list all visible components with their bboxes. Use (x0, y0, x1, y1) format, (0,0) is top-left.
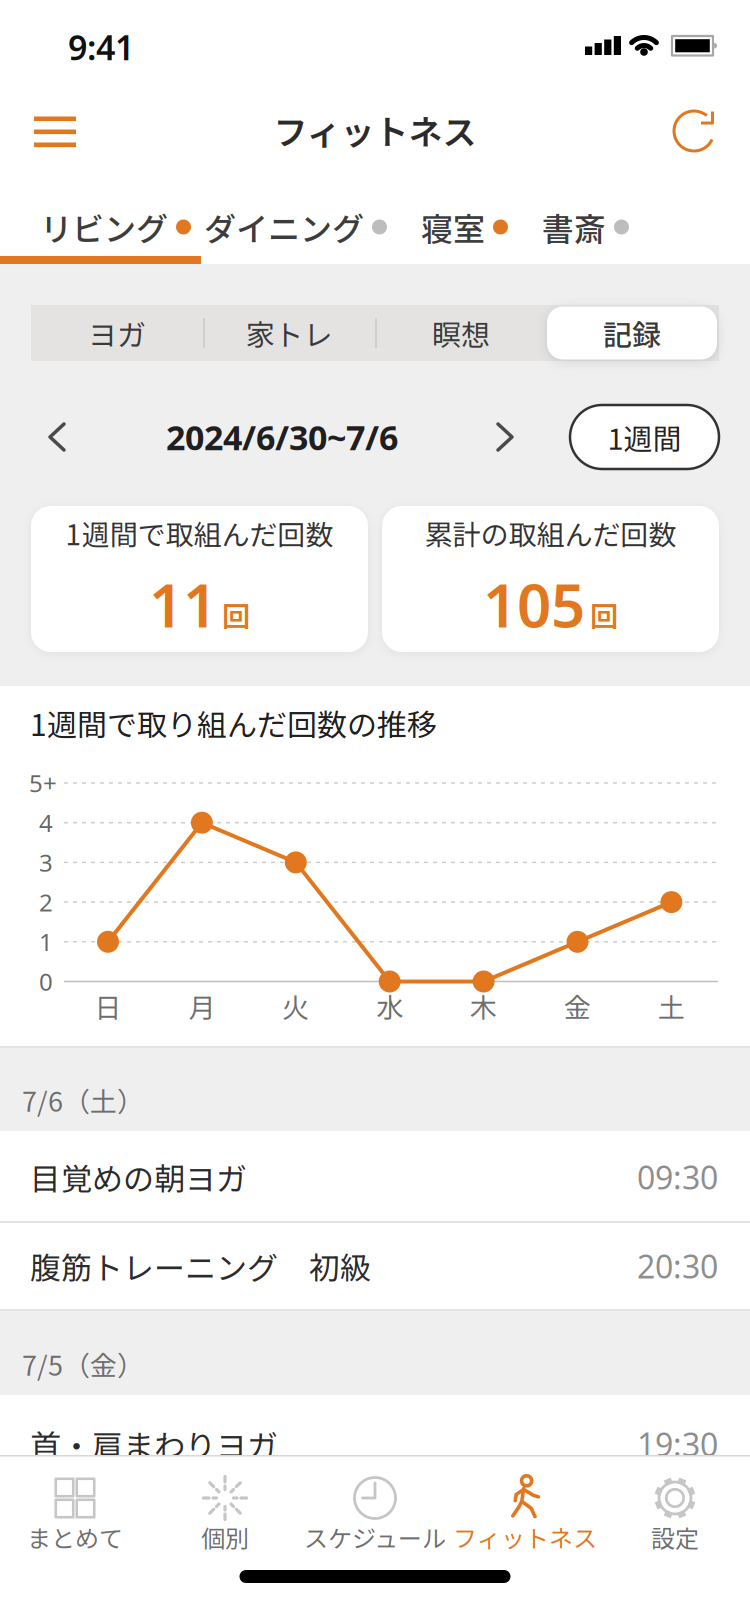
staticText: 7/6（土） (22, 1080, 144, 1120)
staticText: 木 (470, 986, 497, 1026)
button[interactable]: 記録 (546, 305, 718, 361)
button[interactable] (35, 415, 79, 459)
staticText: 目覚めの朝ヨガ (30, 1155, 247, 1199)
staticText: 土 (658, 986, 685, 1026)
staticText: ヨガ (88, 312, 146, 354)
staticText: 火 (282, 986, 309, 1026)
staticText: 腹筋トレーニング 初級 (30, 1244, 371, 1288)
staticText: リビング (40, 204, 168, 250)
button[interactable]: 家トレ (203, 305, 375, 361)
button[interactable]: フィットネス (450, 1455, 600, 1565)
staticText: 日 (94, 986, 121, 1026)
staticText: 105 (483, 563, 585, 645)
staticText: 1週間で取組んだ回数 (65, 513, 333, 553)
staticText: 19:30 (637, 1422, 718, 1466)
staticText: 個別 (201, 1520, 249, 1554)
staticText: 月 (188, 986, 215, 1026)
button[interactable]: 寝室 (421, 204, 508, 250)
staticText: 書斎 (542, 204, 606, 250)
staticText: 家トレ (245, 312, 332, 354)
button[interactable]: 設定 (600, 1455, 750, 1565)
staticText: ダイニング (204, 204, 364, 250)
staticText: 4 (39, 806, 53, 839)
staticText: 累計の取組んだ回数 (424, 513, 676, 553)
button[interactable]: 瞑想 (375, 305, 547, 361)
staticText: 09:30 (637, 1155, 718, 1199)
staticText: 0 (39, 965, 53, 998)
staticText: フィットネス (453, 1520, 597, 1554)
staticText: 7/5（金） (22, 1344, 144, 1384)
staticText: 11 (149, 563, 217, 645)
staticText: 回 (222, 595, 250, 635)
staticText: 水 (376, 986, 403, 1026)
staticText: 2024/6/30~7/6 (166, 414, 398, 460)
button[interactable]: ダイニング (204, 204, 387, 250)
button[interactable]: まとめて (0, 1455, 150, 1565)
button[interactable]: リビング (40, 204, 191, 250)
staticText: 20:30 (637, 1244, 718, 1288)
staticText: 瞑想 (432, 312, 490, 354)
staticText: 1 (39, 925, 53, 958)
button[interactable]: 書斎 (542, 204, 629, 250)
staticText: 設定 (651, 1520, 699, 1554)
button[interactable] (30, 106, 80, 156)
staticText: 記録 (603, 312, 661, 354)
button[interactable]: 1週間 (570, 405, 719, 469)
staticText: スケジュール (304, 1520, 446, 1554)
staticText: 金 (564, 986, 591, 1026)
staticText: 1週間 (607, 416, 681, 458)
staticText: 5+ (29, 767, 57, 799)
button[interactable] (483, 415, 527, 459)
button[interactable]: 腹筋トレーニング 初級 (0, 1222, 750, 1310)
staticText: 回 (590, 595, 618, 635)
staticText: 2 (39, 886, 53, 918)
staticText: 3 (39, 846, 53, 879)
staticText: フィットネス (273, 105, 476, 155)
button[interactable]: 個別 (150, 1455, 300, 1565)
staticText: 1週間で取り組んだ回数の推移 (30, 701, 437, 745)
button[interactable]: 首・肩まわりヨガ (0, 1400, 750, 1488)
button[interactable]: スケジュール (300, 1455, 450, 1565)
staticText: 首・肩まわりヨガ (30, 1422, 278, 1466)
staticText: 寝室 (421, 204, 485, 250)
button[interactable] (668, 105, 720, 157)
button[interactable]: 目覚めの朝ヨガ (0, 1133, 750, 1221)
staticText: まとめて (27, 1520, 123, 1554)
staticText: 9:41 (68, 24, 134, 70)
button[interactable]: ヨガ (31, 305, 203, 361)
